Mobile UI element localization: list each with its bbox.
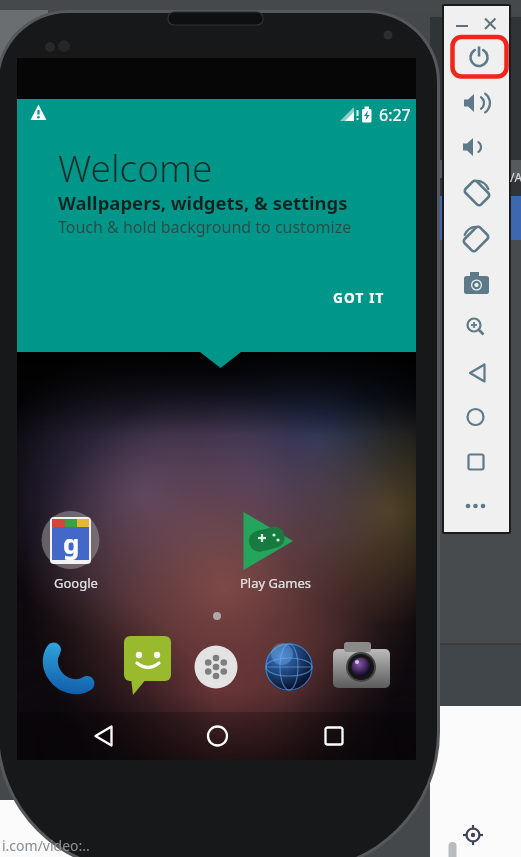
staticText: g (63, 526, 80, 561)
staticText: Play Games (240, 574, 311, 592)
staticText: Google (54, 574, 98, 592)
staticText: /A (510, 169, 521, 185)
staticText: GOT IT (333, 289, 385, 307)
staticText: Welcome (58, 142, 213, 192)
staticText: Touch & hold background to customize (58, 216, 352, 238)
staticText: 6:27 (379, 104, 411, 126)
staticText: i.com/video:.. (2, 836, 90, 855)
staticText: Wallpapers, widgets, & settings (58, 190, 348, 215)
